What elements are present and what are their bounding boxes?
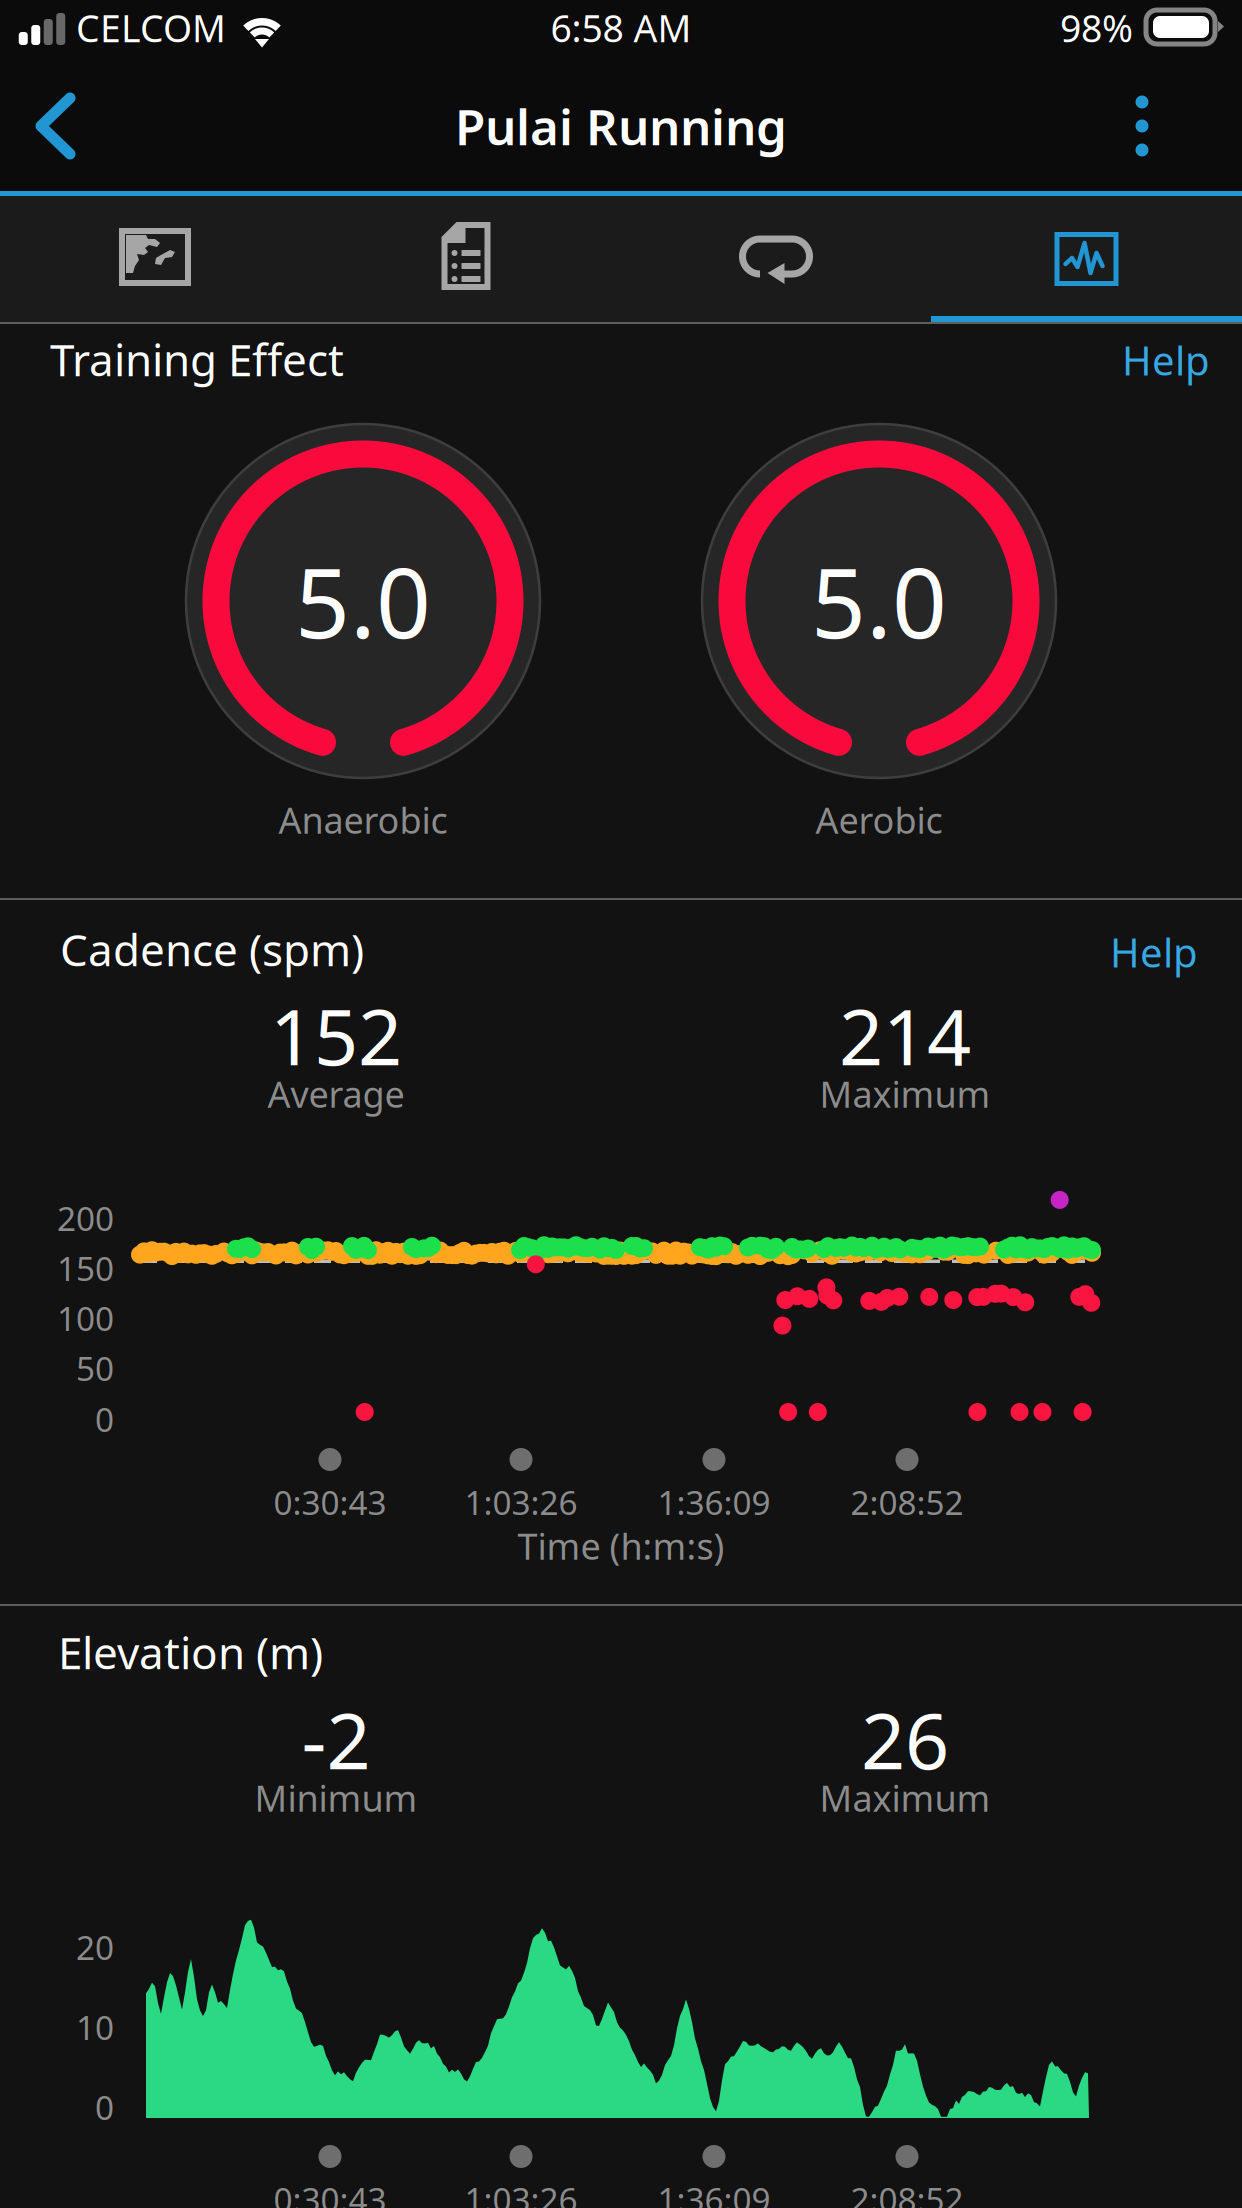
button[interactable]: Help xyxy=(1058,922,1198,982)
button[interactable]: Help xyxy=(1070,330,1210,390)
staticText: 50 xyxy=(76,1346,114,1390)
staticText: -2 xyxy=(301,1688,370,1791)
staticText: Maximum xyxy=(819,1774,990,1822)
staticText: 150 xyxy=(57,1246,114,1290)
button[interactable]: Charts xyxy=(931,196,1242,322)
button[interactable]: Details xyxy=(311,196,621,322)
button[interactable]: Map xyxy=(0,196,310,322)
staticText: 1:03:26 xyxy=(464,1480,577,1524)
staticText: 98% xyxy=(1060,3,1133,53)
staticText: 6:58 AM xyxy=(550,3,691,53)
staticText: 2:08:52 xyxy=(850,1480,963,1524)
staticText: 5.0 xyxy=(811,537,947,665)
button[interactable]: More options xyxy=(1086,60,1198,192)
staticText: 5.0 xyxy=(295,537,431,665)
staticText: 1:03:26 xyxy=(464,2177,577,2208)
staticText: 0:30:43 xyxy=(273,1480,386,1524)
staticText: 200 xyxy=(57,1196,114,1240)
staticText: 152 xyxy=(270,984,402,1087)
staticText: 0:30:43 xyxy=(273,2177,386,2208)
staticText: Cadence (spm) xyxy=(60,920,364,978)
staticText: Minimum xyxy=(254,1774,417,1822)
staticText: Time (h:m:s) xyxy=(517,1522,724,1570)
staticText: Aerobic xyxy=(815,796,942,844)
staticText: 0 xyxy=(95,1397,114,1441)
staticText: 10 xyxy=(76,2005,114,2049)
staticText: Pulai Running xyxy=(455,93,787,159)
staticText: Average xyxy=(267,1070,404,1118)
staticText: Elevation (m) xyxy=(58,1623,323,1681)
staticText: 100 xyxy=(57,1296,114,1340)
staticText: Anaerobic xyxy=(278,796,447,844)
staticText: 0 xyxy=(95,2085,114,2129)
staticText: 1:36:09 xyxy=(657,1480,770,1524)
staticText: 1:36:09 xyxy=(657,2177,770,2208)
staticText: 20 xyxy=(76,1925,114,1969)
staticText: Training Effect xyxy=(50,330,344,388)
staticText: Help xyxy=(1122,333,1210,386)
staticText: CELCOM xyxy=(76,3,226,53)
staticText: Maximum xyxy=(819,1070,990,1118)
staticText: 26 xyxy=(861,1688,949,1791)
staticText: Help xyxy=(1110,925,1198,978)
button[interactable]: Laps xyxy=(621,196,931,322)
staticText: 2:08:52 xyxy=(850,2177,963,2208)
staticText: 214 xyxy=(839,984,971,1087)
button[interactable]: Back xyxy=(0,60,112,192)
